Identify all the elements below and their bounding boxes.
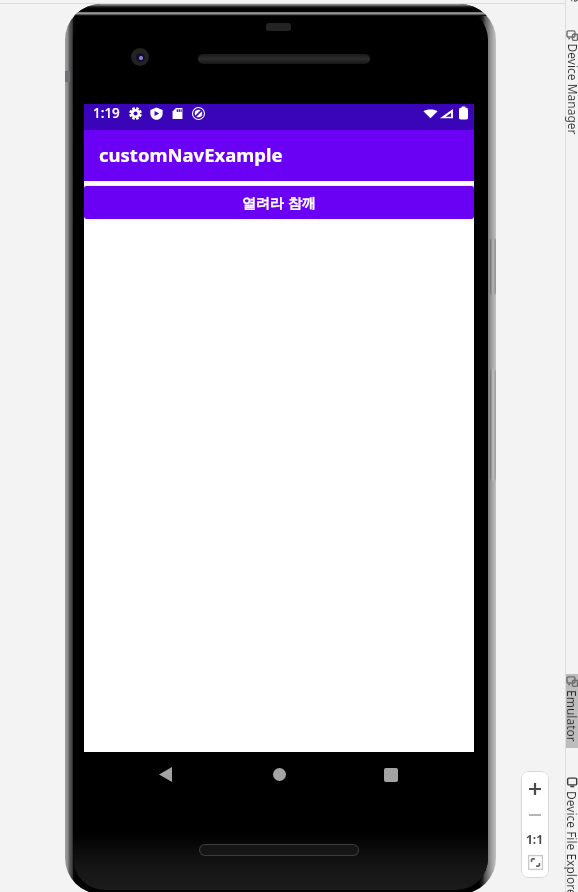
button[interactable]: Back xyxy=(148,752,182,797)
button[interactable]: Recent apps xyxy=(374,752,408,797)
staticText: customNavExample xyxy=(99,142,283,167)
button[interactable]: Device File Explorer xyxy=(566,775,578,892)
button[interactable]: Home xyxy=(262,752,296,797)
button[interactable]: 열려라 참깨 xyxy=(84,186,474,219)
button[interactable]: Device Manager xyxy=(566,28,578,142)
button[interactable]: 1:1 xyxy=(524,828,546,850)
button[interactable]: Emulator xyxy=(566,674,578,748)
staticText: 1:19 xyxy=(93,104,120,122)
button[interactable]: Zoom to fit xyxy=(524,851,546,873)
staticText: 1:1 xyxy=(526,831,544,847)
staticText: 열려라 참깨 xyxy=(242,193,316,212)
staticText: Device Manager xyxy=(564,43,578,134)
button[interactable]: Zoom out xyxy=(524,804,546,826)
staticText: e xyxy=(567,0,578,2)
staticText: Device File Explorer xyxy=(564,791,578,892)
button[interactable]: Zoom in xyxy=(524,778,546,800)
staticText: Emulator xyxy=(564,690,578,742)
